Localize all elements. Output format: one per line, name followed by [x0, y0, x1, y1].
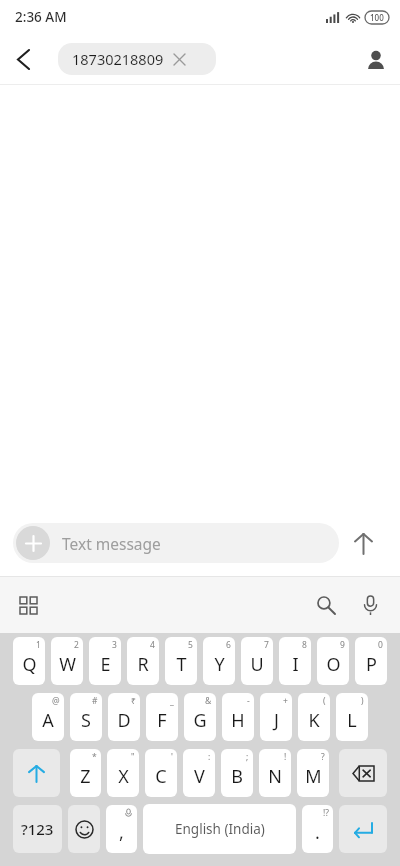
button[interactable]: # — [70, 693, 102, 741]
button[interactable]: - — [222, 693, 254, 741]
staticText: @ — [52, 695, 60, 707]
button[interactable]: Add attachment — [13, 523, 339, 563]
button[interactable]: Add attachment — [16, 526, 50, 560]
button[interactable]: ) — [336, 693, 368, 741]
staticText: I — [292, 652, 299, 677]
staticText: X — [118, 764, 129, 789]
staticText: Text message — [62, 533, 161, 554]
staticText: ' — [171, 751, 173, 763]
button[interactable]: 1 — [13, 637, 45, 685]
staticText: Q — [22, 652, 37, 677]
staticText: 1 — [36, 639, 41, 651]
button[interactable]: 2 — [51, 637, 83, 685]
button[interactable]: Search — [304, 583, 348, 627]
button[interactable]: !? — [302, 805, 333, 853]
staticText: # — [92, 695, 98, 707]
button[interactable]: Contact details — [352, 35, 400, 83]
button[interactable]: Voice input — [348, 583, 392, 627]
staticText: O — [326, 652, 341, 677]
staticText: 2 — [74, 639, 79, 651]
staticText: 9 — [340, 639, 345, 651]
button[interactable]: " — [107, 749, 139, 797]
staticText: H — [231, 708, 245, 733]
staticText: : — [208, 751, 211, 763]
staticText: 100 — [370, 12, 384, 23]
staticText: " — [131, 751, 135, 763]
staticText: 5 — [188, 639, 193, 651]
staticText: M — [305, 764, 322, 789]
staticText: K — [308, 708, 320, 733]
staticText: A — [42, 708, 54, 733]
staticText: 18730218809 — [72, 49, 164, 69]
button[interactable]: @ — [32, 693, 64, 741]
staticText: 7 — [264, 639, 269, 651]
button[interactable]: Keyboard options — [6, 583, 50, 627]
staticText: S — [81, 708, 91, 733]
staticText: P — [366, 652, 377, 677]
staticText: , — [119, 820, 124, 845]
button[interactable]: 9 — [317, 637, 349, 685]
button[interactable]: English (India) — [143, 804, 296, 854]
staticText: C — [155, 764, 167, 789]
staticText: N — [268, 764, 282, 789]
staticText: ; — [246, 751, 249, 763]
staticText: + — [283, 695, 288, 707]
button[interactable]: 3 — [89, 637, 121, 685]
staticText: ( — [323, 695, 326, 707]
staticText: 6 — [226, 639, 231, 651]
staticText: English (India) — [175, 820, 265, 838]
button[interactable]: 4 — [127, 637, 159, 685]
button[interactable]: ' — [145, 749, 177, 797]
button[interactable]: , — [106, 805, 137, 853]
staticText: R — [137, 652, 149, 677]
staticText: - — [247, 695, 250, 707]
staticText: W — [59, 652, 76, 677]
staticText: D — [117, 708, 131, 733]
staticText: 8 — [302, 639, 307, 651]
staticText: B — [231, 764, 243, 789]
staticText: 3 — [112, 639, 117, 651]
staticText: ) — [361, 695, 364, 707]
staticText: G — [193, 708, 207, 733]
staticText: 0 — [378, 639, 383, 651]
button[interactable]: ( — [298, 693, 330, 741]
staticText: E — [100, 652, 111, 677]
staticText: L — [347, 708, 357, 733]
staticText: T — [176, 652, 187, 677]
button[interactable]: 8 — [279, 637, 311, 685]
button[interactable]: 5 — [165, 637, 197, 685]
button[interactable]: 6 — [203, 637, 235, 685]
button[interactable]: Emoji — [68, 805, 100, 853]
button[interactable]: + — [260, 693, 292, 741]
button[interactable]: Enter — [339, 805, 387, 853]
staticText: ₹ — [131, 695, 136, 707]
button[interactable]: ? — [297, 749, 329, 797]
button[interactable]: Backspace — [339, 749, 387, 797]
button[interactable]: ₹ — [108, 693, 140, 741]
staticText: Z — [80, 764, 91, 789]
button[interactable]: Send — [339, 519, 387, 567]
button[interactable]: 0 — [355, 637, 387, 685]
button[interactable]: Back — [0, 36, 46, 82]
button[interactable]: ?123 — [13, 805, 62, 853]
staticText: V — [194, 764, 205, 789]
button[interactable]: ; — [221, 749, 253, 797]
staticText: J — [274, 708, 279, 733]
button[interactable]: _ — [146, 693, 178, 741]
button[interactable]: 7 — [241, 637, 273, 685]
button[interactable]: * — [70, 749, 101, 797]
staticText: !? — [323, 807, 329, 819]
staticText: F — [157, 708, 167, 733]
staticText: * — [92, 751, 97, 763]
staticText: . — [315, 820, 320, 845]
button[interactable]: 18730218809 — [58, 43, 216, 75]
button[interactable]: Shift — [13, 749, 60, 797]
staticText: Y — [214, 652, 225, 677]
button[interactable]: : — [183, 749, 215, 797]
staticText: 4 — [150, 639, 155, 651]
staticText: 2:36 AM — [15, 8, 67, 26]
button[interactable]: ! — [259, 749, 291, 797]
button[interactable]: & — [184, 693, 216, 741]
staticText: ! — [284, 751, 287, 763]
staticText: & — [205, 695, 212, 707]
